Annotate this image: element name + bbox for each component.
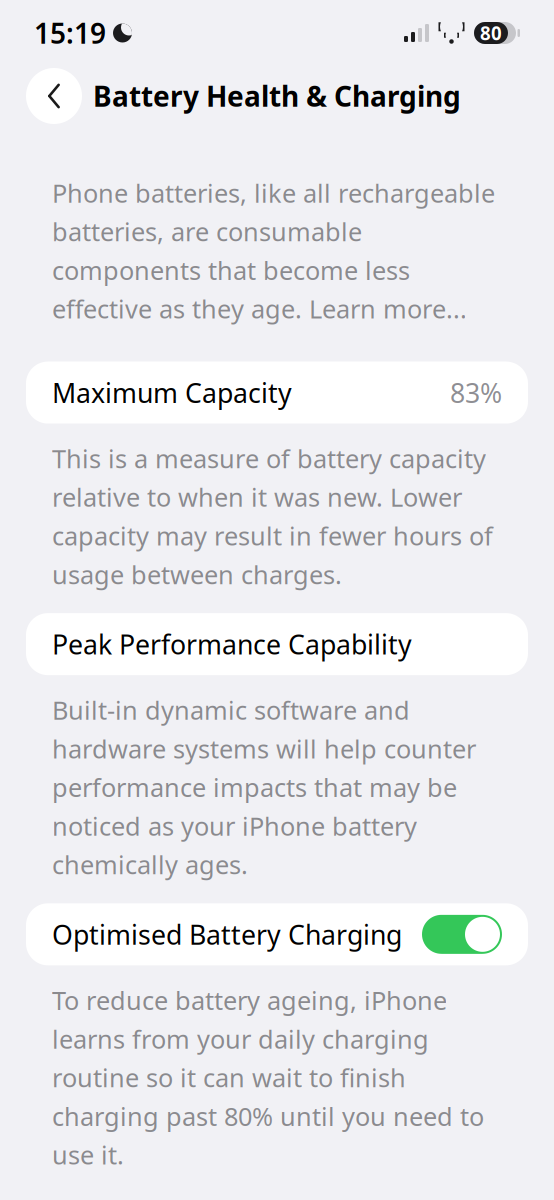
staticText: 15:19 <box>34 14 106 52</box>
staticText: Battery Health & Charging <box>93 77 461 115</box>
button[interactable]: Maximum Capacity <box>26 362 528 424</box>
button[interactable]: Phone batteries, like all rechargeable b… <box>0 176 554 326</box>
staticText: 80 <box>480 21 502 45</box>
staticText: Peak Performance Capability <box>52 626 412 662</box>
staticText: Optimised Battery Charging <box>52 917 402 952</box>
staticText: Phone batteries, like all rechargeable b… <box>52 176 495 326</box>
staticText: To reduce battery ageing, iPhone learns … <box>52 983 484 1171</box>
staticText: 83% <box>450 375 502 410</box>
staticText: Maximum Capacity <box>52 375 292 410</box>
button[interactable]: Optimised Battery Charging <box>26 903 528 965</box>
staticText: Built-in dynamic software and hardware s… <box>52 693 476 881</box>
button[interactable]: Back <box>26 68 82 124</box>
button[interactable]: Peak Performance Capability <box>26 613 528 675</box>
staticText: This is a measure of battery capacity re… <box>52 442 493 591</box>
